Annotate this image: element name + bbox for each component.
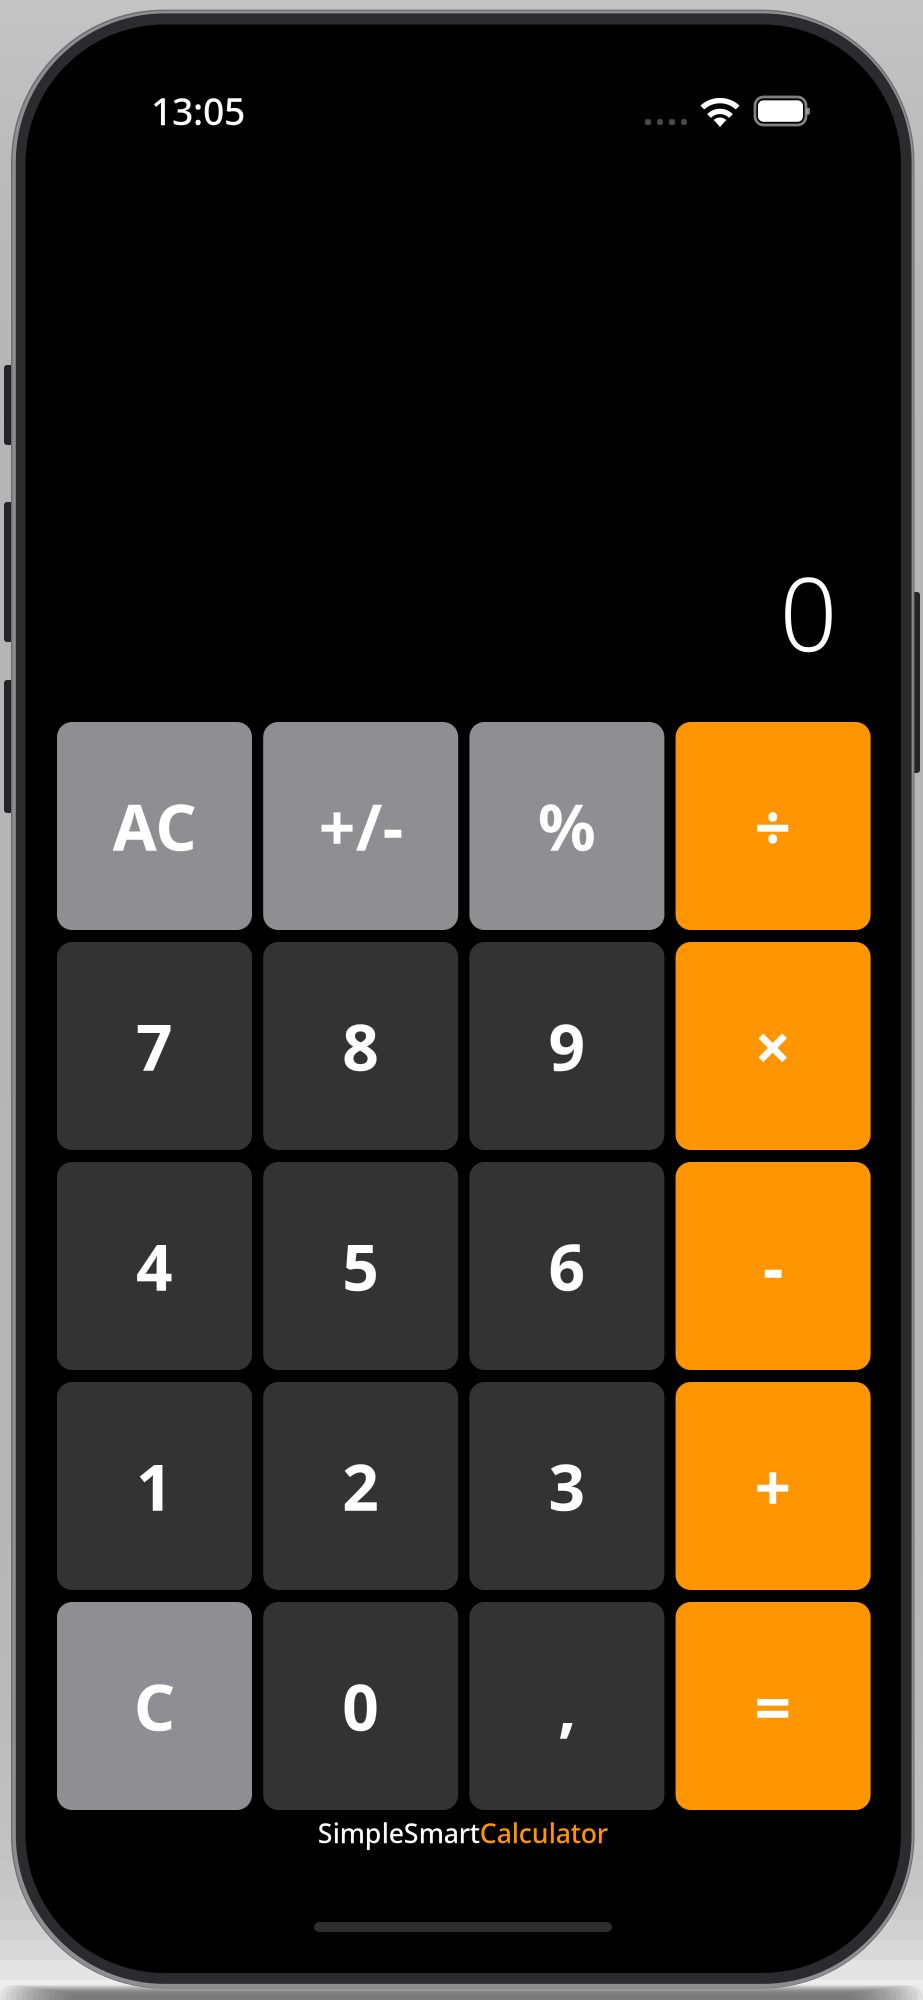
staticText: ÷ — [755, 783, 792, 868]
staticText: 5 — [342, 1223, 379, 1308]
staticText: 0 — [342, 1663, 379, 1748]
staticText: 7 — [136, 1003, 173, 1088]
button[interactable]: 3 — [469, 1382, 664, 1590]
staticText: , — [558, 1663, 576, 1748]
staticText: 9 — [548, 1003, 585, 1088]
staticText: 13:05 — [151, 86, 245, 136]
button[interactable]: 4 — [57, 1162, 252, 1370]
button[interactable]: 9 — [469, 942, 664, 1150]
button[interactable]: × — [676, 942, 871, 1150]
button[interactable]: +/- — [263, 722, 458, 930]
button[interactable]: 5 — [263, 1162, 458, 1370]
staticText: = — [755, 1663, 792, 1748]
staticText: Calculator — [480, 1815, 608, 1851]
button[interactable]: - — [676, 1162, 871, 1370]
staticText: SimpleSmart — [318, 1815, 480, 1851]
staticText: 3 — [548, 1443, 585, 1528]
staticText: 4 — [136, 1223, 173, 1308]
staticText: C — [134, 1663, 175, 1748]
staticText: × — [755, 1003, 792, 1088]
button[interactable]: = — [676, 1602, 871, 1810]
staticText: 2 — [342, 1443, 379, 1528]
button[interactable]: % — [469, 722, 664, 930]
button[interactable]: AC — [57, 722, 252, 930]
button[interactable]: ÷ — [676, 722, 871, 930]
button[interactable]: 0 — [263, 1602, 458, 1810]
staticText: 8 — [342, 1003, 379, 1088]
button[interactable]: 2 — [263, 1382, 458, 1590]
staticText: 0 — [779, 545, 837, 679]
button[interactable]: C — [57, 1602, 252, 1810]
staticText: 6 — [548, 1223, 585, 1308]
staticText: - — [763, 1223, 783, 1308]
staticText: 1 — [136, 1443, 173, 1528]
button[interactable]: 6 — [469, 1162, 664, 1370]
button[interactable]: 1 — [57, 1382, 252, 1590]
button[interactable]: + — [676, 1382, 871, 1590]
staticText: +/- — [319, 783, 403, 868]
button[interactable]: , — [469, 1602, 664, 1810]
staticText: AC — [112, 783, 196, 868]
button[interactable]: 8 — [263, 942, 458, 1150]
button[interactable]: 7 — [57, 942, 252, 1150]
staticText: + — [755, 1443, 792, 1528]
staticText: % — [538, 783, 596, 868]
